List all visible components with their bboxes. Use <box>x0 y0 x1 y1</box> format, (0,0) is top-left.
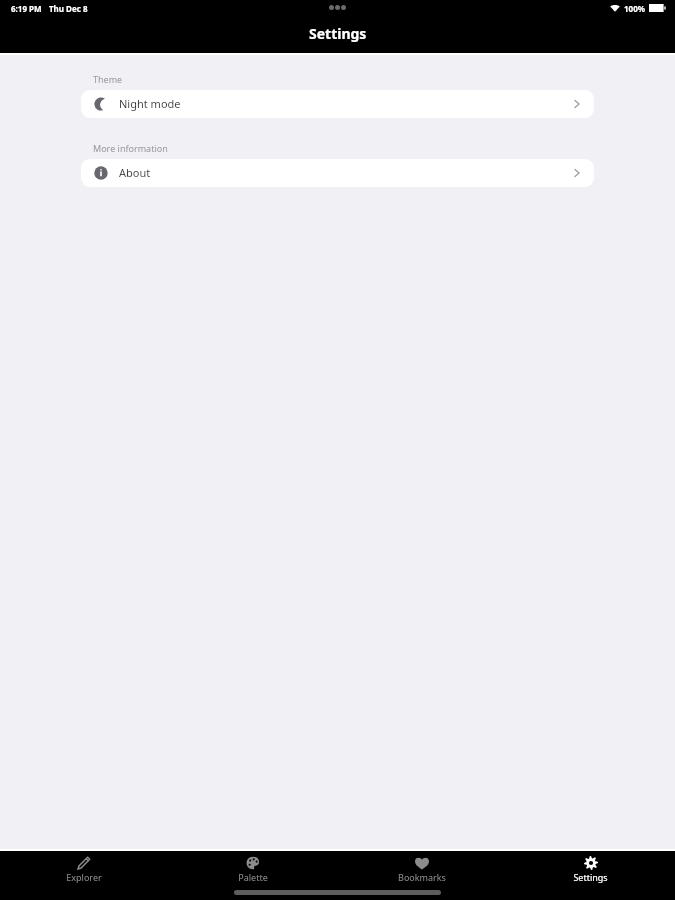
button[interactable]: Explorer <box>0 854 168 885</box>
button[interactable]: Bookmarks <box>337 854 506 885</box>
staticText: Explorer <box>66 871 102 883</box>
staticText: 100% <box>624 3 645 14</box>
staticText: Bookmarks <box>398 871 446 883</box>
staticText: About <box>119 165 151 180</box>
staticText: 6:19 PM <box>11 3 42 14</box>
button[interactable]: Palette <box>168 854 337 885</box>
staticText: Night mode <box>119 96 181 111</box>
staticText: Settings <box>309 24 367 43</box>
button[interactable]: Settings <box>506 854 675 885</box>
staticText: Palette <box>238 871 268 883</box>
staticText: More information <box>93 142 168 154</box>
staticText: Thu Dec 8 <box>49 3 88 14</box>
staticText: Theme <box>93 73 123 85</box>
staticText: Settings <box>573 871 608 883</box>
button[interactable]: About <box>81 159 594 187</box>
button[interactable]: Night mode <box>81 90 594 118</box>
